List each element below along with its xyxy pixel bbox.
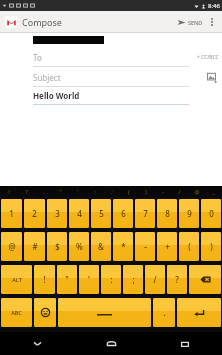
button[interactable]: , <box>35 186 52 197</box>
button[interactable]: " <box>57 265 77 294</box>
button[interactable]: ( <box>120 186 137 197</box>
button[interactable]: @ <box>188 186 205 197</box>
staticText: : <box>110 274 113 285</box>
button[interactable]: & <box>91 232 111 261</box>
staticText: $ <box>55 241 60 252</box>
button[interactable]: Hide keyboard <box>0 332 74 355</box>
button[interactable]: More options <box>206 11 218 33</box>
button[interactable]: To <box>0 47 194 67</box>
button[interactable]: # <box>24 232 45 261</box>
staticText: - <box>144 241 147 252</box>
button[interactable]: SEND <box>174 15 206 30</box>
staticText: 0 <box>209 208 214 219</box>
button[interactable]: . <box>153 298 175 327</box>
staticText: ! <box>43 274 46 285</box>
staticText: ' <box>77 188 79 196</box>
staticText: ' <box>88 274 90 285</box>
button[interactable]: 8 <box>157 199 177 228</box>
button[interactable]: ! <box>34 265 55 294</box>
staticText: ; <box>132 274 135 285</box>
button[interactable]: 7 <box>135 199 155 228</box>
button[interactable]: 0 <box>201 199 221 228</box>
staticText: 5 <box>99 208 104 219</box>
staticText: + <box>165 241 170 252</box>
staticText: @ <box>194 188 200 196</box>
staticText: 6 <box>121 208 126 219</box>
staticText: ABC <box>11 309 22 316</box>
button[interactable]: 4 <box>69 199 89 228</box>
staticText: % <box>76 241 83 252</box>
button[interactable]: ) <box>201 232 221 261</box>
button[interactable]: Compose <box>4 14 63 30</box>
staticText: ) <box>145 188 147 196</box>
button[interactable]: _ <box>205 186 222 197</box>
button[interactable]: / <box>171 186 188 197</box>
staticText: 3 <box>55 208 60 219</box>
staticText: 8 <box>165 208 170 219</box>
button[interactable]: ( <box>179 232 199 261</box>
button[interactable]: Alt <box>1 265 32 294</box>
button[interactable]: ! <box>0 186 18 197</box>
staticText: 2 <box>32 208 37 219</box>
button[interactable]: Enter <box>177 298 221 327</box>
button[interactable]: Emoji <box>34 298 56 327</box>
button[interactable]: 3 <box>47 199 67 228</box>
staticText: / <box>178 188 181 196</box>
button[interactable]: * <box>113 232 133 261</box>
button[interactable]: / <box>145 265 165 294</box>
button[interactable]: : <box>101 265 121 294</box>
button[interactable]: ? <box>18 186 35 197</box>
button[interactable]: Hello World <box>0 87 222 104</box>
button[interactable]: " <box>52 186 69 197</box>
button[interactable]: 6 <box>113 199 133 228</box>
button[interactable]: ' <box>69 186 86 197</box>
staticText: # <box>32 241 38 252</box>
button[interactable]: Recent apps <box>148 332 222 355</box>
staticText: 4 <box>77 208 82 219</box>
button[interactable]: 9 <box>179 199 199 228</box>
button[interactable]: ; <box>103 186 120 197</box>
button[interactable]: 2 <box>24 199 45 228</box>
staticText: 1 <box>9 208 14 219</box>
staticText: + CC/BCC <box>197 54 219 61</box>
button[interactable]: + <box>157 232 177 261</box>
staticText: " <box>65 274 69 285</box>
button[interactable]: Backspace <box>189 265 221 294</box>
button[interactable]: % <box>69 232 89 261</box>
staticText: Hello World <box>33 90 80 101</box>
staticText: ? <box>175 274 179 285</box>
staticText: 8:46 <box>208 2 220 10</box>
button[interactable]: Home <box>74 332 148 355</box>
staticText: ( <box>128 188 130 196</box>
button[interactable]: $ <box>47 232 67 261</box>
staticText: . <box>163 307 166 318</box>
staticText: ; <box>111 188 113 196</box>
staticText: Compose <box>22 16 62 28</box>
button[interactable]: 5 <box>91 199 111 228</box>
button[interactable]: 1 <box>1 199 22 228</box>
staticText: , <box>43 188 45 196</box>
button[interactable]: ' <box>79 265 99 294</box>
button[interactable]: - <box>154 186 171 197</box>
staticText: Subject <box>33 72 61 83</box>
staticText: To <box>33 52 42 63</box>
button[interactable]: ; <box>123 265 143 294</box>
staticText: ALT <box>12 276 22 283</box>
button[interactable]: + CC/BCC <box>194 51 222 64</box>
button[interactable]: ? <box>167 265 187 294</box>
staticText: 7 <box>143 208 148 219</box>
button[interactable]: @ <box>1 232 22 261</box>
button[interactable]: : <box>86 186 103 197</box>
button[interactable]: Attach image <box>203 70 222 85</box>
staticText: ( <box>188 241 191 252</box>
button[interactable]: Subject <box>0 67 203 87</box>
staticText: - <box>162 188 164 196</box>
staticText: ) <box>210 241 213 252</box>
staticText: : <box>94 188 96 196</box>
button[interactable]: ) <box>137 186 154 197</box>
button[interactable]: Space <box>58 298 151 327</box>
staticText: & <box>98 241 104 252</box>
button[interactable]: - <box>135 232 155 261</box>
button[interactable]: Letters <box>1 298 32 327</box>
staticText: @ <box>8 241 16 252</box>
